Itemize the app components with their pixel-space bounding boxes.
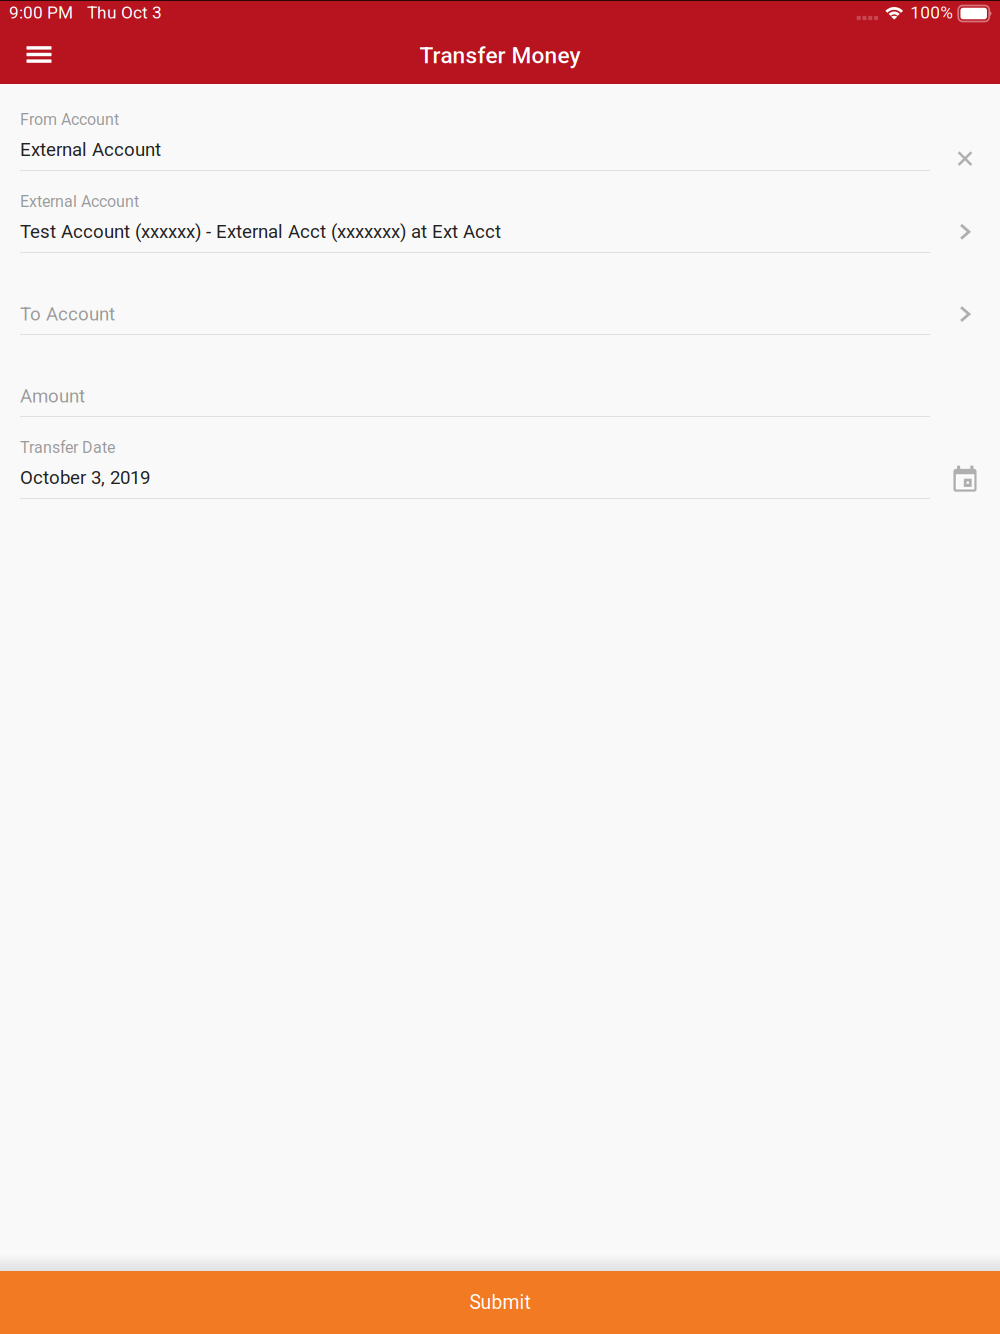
button[interactable]: Pick transfer date xyxy=(930,457,1000,497)
button[interactable]: Change external account xyxy=(930,212,1000,252)
staticText: October 3, 2019 xyxy=(20,467,150,488)
staticText: Thu Oct 3 xyxy=(87,2,162,23)
staticText: Transfer Date xyxy=(20,438,115,457)
button[interactable]: Menu xyxy=(0,29,78,79)
staticText: 100% xyxy=(910,2,953,23)
staticText: External Account xyxy=(20,139,161,160)
staticText: 9:00 PM xyxy=(9,2,73,23)
staticText: Transfer Money xyxy=(419,42,580,69)
staticText: Amount xyxy=(20,385,85,407)
staticText: Submit xyxy=(469,1291,530,1314)
staticText: To Account xyxy=(20,303,115,325)
button[interactable]: Clear From Account xyxy=(930,139,1000,179)
staticText: External Account xyxy=(20,192,139,211)
staticText: Test Account (xxxxxx) - External Acct (x… xyxy=(20,221,501,242)
button[interactable]: Submit xyxy=(0,1271,1000,1334)
staticText: From Account xyxy=(20,110,119,129)
button[interactable]: Select To Account xyxy=(930,294,1000,334)
